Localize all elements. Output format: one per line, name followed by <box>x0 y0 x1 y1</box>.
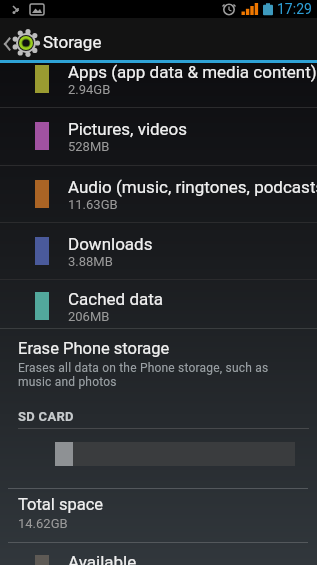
staticText: 14.62GB <box>18 516 68 531</box>
staticText: 3.88MB <box>68 254 113 269</box>
staticText: 11.63GB <box>68 197 118 212</box>
staticText: Audio (music, ringtones, podcasts, and <box>68 177 317 197</box>
button[interactable]: Cached data <box>0 290 317 344</box>
button[interactable]: Erase Phone storage <box>0 339 317 389</box>
staticText: Erase Phone storage <box>18 339 170 358</box>
staticText: Erases all data on the Phone storage, su… <box>18 361 269 389</box>
button[interactable]: Total space <box>0 495 317 531</box>
staticText: SD CARD <box>18 409 74 424</box>
staticText: 2.94GB <box>68 82 111 97</box>
button[interactable]: Audio (music, ringtones, podcasts, and <box>0 178 317 232</box>
staticText: Cached data <box>68 289 164 309</box>
button[interactable]: Pictures, videos <box>0 120 317 174</box>
staticText: Apps (app data & media content) <box>68 62 317 82</box>
staticText: Total space <box>18 495 104 514</box>
staticText: Storage <box>43 32 102 52</box>
button[interactable]: Available <box>0 552 317 565</box>
button[interactable]: Storage <box>0 18 317 60</box>
staticText: Downloads <box>68 234 153 254</box>
staticText: Pictures, videos <box>68 119 188 139</box>
button[interactable]: Apps (app data & media content) <box>0 63 317 117</box>
button[interactable]: Downloads <box>0 235 317 289</box>
staticText: Available <box>68 552 137 565</box>
staticText: 206MB <box>68 309 110 324</box>
staticText: 528MB <box>68 139 110 154</box>
staticText: 17:29 <box>277 1 312 17</box>
